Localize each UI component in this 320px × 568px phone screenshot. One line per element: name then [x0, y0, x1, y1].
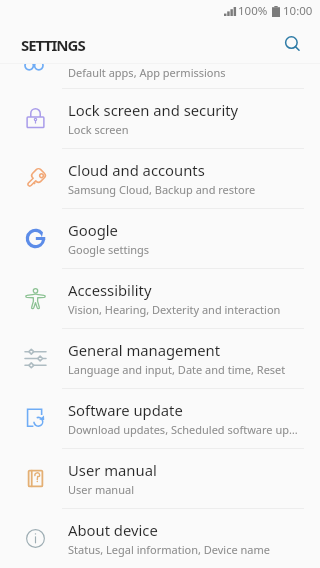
staticText: Cloud and accounts [68, 160, 205, 180]
staticText: 100% [238, 3, 268, 19]
button[interactable]: Default apps, App permissions [0, 64, 320, 88]
staticText: Vision, Hearing, Dexterity and interacti… [68, 302, 281, 317]
staticText: Samsung Cloud, Backup and restore [68, 182, 256, 197]
staticText: User manual [68, 482, 134, 497]
staticText: Lock screen and security [68, 100, 239, 120]
staticText: Google [68, 220, 118, 240]
staticText: Default apps, App permissions [68, 65, 226, 80]
staticText: General management [68, 340, 221, 360]
staticText: Software update [68, 400, 183, 420]
staticText: Accessibility [68, 280, 152, 300]
button[interactable]: Google [0, 209, 320, 268]
staticText: Status, Legal information, Device name [68, 542, 271, 557]
button[interactable]: General management [0, 329, 320, 388]
staticText: Google settings [68, 242, 150, 257]
button[interactable]: Software update [0, 389, 320, 448]
staticText: SETTINGS [21, 35, 85, 55]
staticText: Language and input, Date and time, Reset [68, 362, 286, 377]
staticText: About device [68, 520, 158, 540]
staticText: User manual [68, 460, 157, 480]
button[interactable]: Accessibility [0, 269, 320, 328]
staticText: Lock screen [68, 122, 129, 137]
button[interactable]: About device [0, 509, 320, 568]
button[interactable]: Cloud and accounts [0, 149, 320, 208]
staticText: 10:00 [283, 3, 313, 19]
button[interactable]: Search [276, 28, 310, 62]
button[interactable]: User manual [0, 449, 320, 508]
button[interactable]: Lock screen and security [0, 89, 320, 148]
staticText: Download updates, Scheduled software up… [68, 422, 298, 437]
